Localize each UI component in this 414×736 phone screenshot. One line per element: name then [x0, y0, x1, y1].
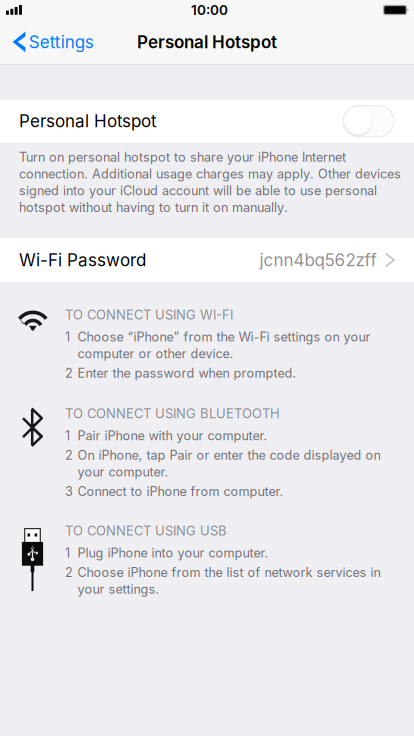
- button[interactable]: Personal Hotspot: [343, 106, 394, 137]
- staticText: Choose “iPhone” from the Wi-Fi settings …: [78, 329, 371, 361]
- staticText: 3: [65, 484, 73, 499]
- staticText: Personal Hotspot: [137, 32, 277, 52]
- staticText: 2: [65, 365, 73, 381]
- staticText: jcnn4bq562zff: [260, 250, 377, 270]
- button[interactable]: Wi-Fi Password: [0, 238, 414, 282]
- staticText: Settings: [29, 32, 94, 52]
- staticText: Pair iPhone with your computer.: [78, 428, 268, 443]
- staticText: TO CONNECT USING BLUETOOTH: [65, 406, 280, 421]
- staticText: Wi-Fi Password: [19, 250, 146, 270]
- staticText: Choose iPhone from the list of network s…: [78, 565, 381, 597]
- staticText: TO CONNECT USING USB: [65, 523, 227, 539]
- staticText: On iPhone, tap Pair or enter the code di…: [78, 447, 381, 479]
- staticText: 1: [65, 329, 70, 344]
- staticText: 2: [65, 447, 73, 463]
- button[interactable]: Settings: [0, 26, 104, 58]
- staticText: Plug iPhone into your computer.: [78, 545, 269, 560]
- staticText: Turn on personal hotspot to share your i…: [19, 150, 401, 215]
- staticText: 1: [65, 545, 70, 560]
- staticText: Enter the password when prompted.: [78, 365, 297, 381]
- staticText: Connect to iPhone from computer.: [78, 484, 284, 499]
- staticText: Personal Hotspot: [19, 111, 157, 131]
- staticText: 2: [65, 565, 73, 580]
- staticText: 1: [65, 428, 70, 443]
- staticText: TO CONNECT USING WI-FI: [65, 307, 233, 323]
- staticText: 10:00: [191, 2, 228, 18]
